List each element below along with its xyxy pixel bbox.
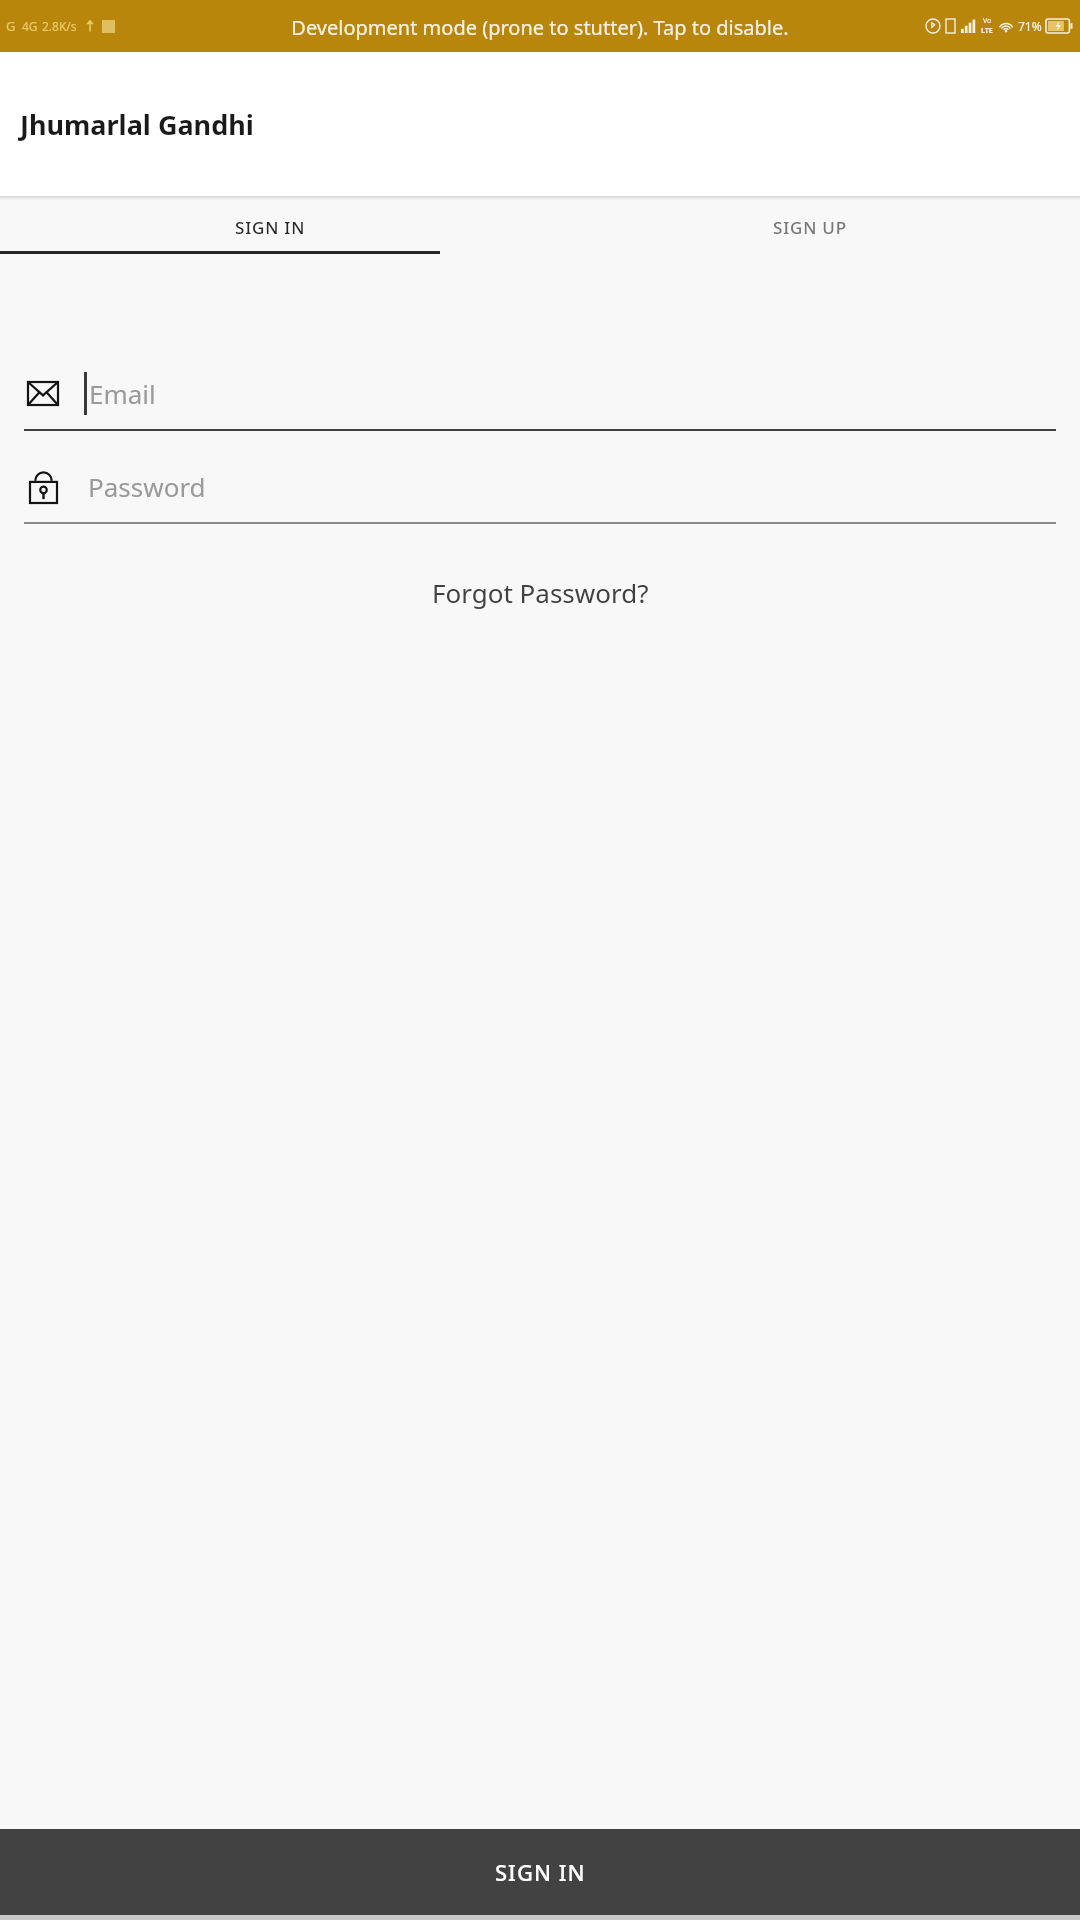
staticText: Jhumarlal Gandhi	[20, 106, 254, 143]
staticText: SIGN UP	[773, 216, 847, 239]
button[interactable]: SIGN IN	[0, 200, 540, 254]
button[interactable]: SIGN UP	[540, 200, 1080, 254]
staticText: Email	[89, 376, 156, 411]
staticText: SIGN IN	[235, 216, 306, 239]
staticText: 2.8K/s	[42, 18, 77, 34]
other: Email	[24, 382, 62, 405]
other: Password	[24, 469, 62, 503]
staticText: 4G	[22, 18, 38, 34]
staticText: Password	[88, 469, 206, 504]
button[interactable]: SIGN IN	[0, 1829, 1080, 1915]
button[interactable]: Password	[24, 450, 1056, 524]
staticText: G	[6, 17, 16, 35]
staticText: 71%	[1018, 18, 1042, 34]
button[interactable]: Development mode (prone to stutter). Tap…	[0, 14, 1080, 41]
staticText: SIGN IN	[495, 1857, 586, 1887]
button[interactable]: Forgot Password?	[416, 567, 665, 618]
staticText: Vo	[983, 16, 992, 26]
button[interactable]: Email	[24, 357, 1056, 431]
staticText: Forgot Password?	[432, 575, 649, 610]
staticText: LTE	[981, 26, 993, 36]
